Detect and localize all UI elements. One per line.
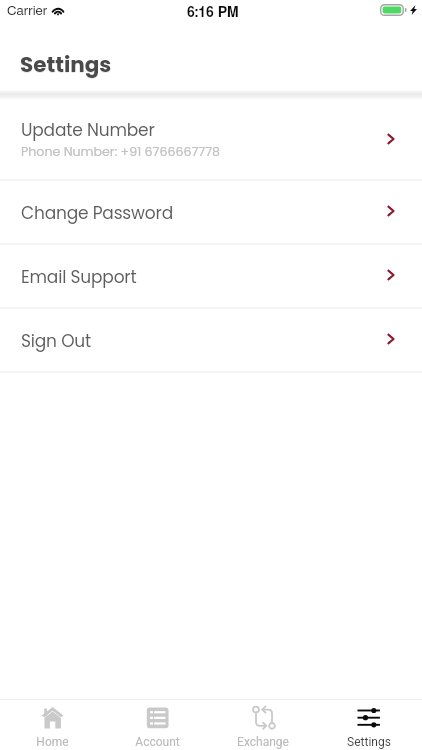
button[interactable]: Home <box>0 700 105 750</box>
button[interactable]: Exchange <box>210 700 316 750</box>
button[interactable]: Update Number <box>0 100 422 179</box>
staticText: Home <box>36 735 69 749</box>
button[interactable]: Change Password <box>0 181 422 243</box>
staticText: 6:16 PM <box>187 6 239 20</box>
button[interactable]: Sign Out <box>0 309 422 371</box>
staticText: Email Support <box>21 265 137 289</box>
staticText: Carrier <box>7 4 48 18</box>
staticText: Settings <box>347 735 391 749</box>
button[interactable]: Account <box>105 700 210 750</box>
staticText: Settings <box>20 50 112 80</box>
staticText: Exchange <box>237 735 289 749</box>
button[interactable]: Settings <box>316 700 422 750</box>
staticText: Change Password <box>21 201 173 225</box>
staticText: Account <box>135 735 180 749</box>
other: Change Password <box>384 203 400 219</box>
other: Sign Out <box>384 331 400 347</box>
other: Update Number <box>384 131 400 147</box>
staticText: Update Number <box>21 118 155 142</box>
staticText: Settings <box>20 49 112 79</box>
staticText: Phone Number: +91 6766667778 <box>21 143 220 161</box>
button[interactable]: Email Support <box>0 245 422 307</box>
staticText: Sign Out <box>21 329 92 353</box>
other: Email Support <box>384 267 400 283</box>
